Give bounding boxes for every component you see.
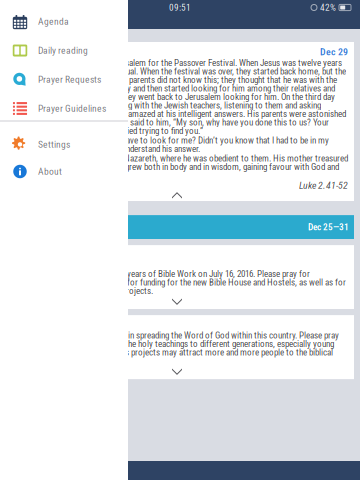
button[interactable]: Expand prayer request (0, 366, 354, 376)
staticText: Give thanks for the progress made in spr… (6, 331, 339, 365)
button[interactable]: Settings (0, 131, 128, 158)
staticText: So Jesus went back with them to Nazareth… (6, 154, 348, 180)
staticText: Settings (38, 139, 70, 150)
button[interactable]: Expand prayer request (0, 296, 354, 306)
staticText: Prayer Requests (38, 74, 101, 85)
staticText: Agenda (38, 16, 69, 27)
staticText: Luke 2.41-52 (299, 180, 348, 191)
staticText: 09:51 (169, 2, 191, 13)
staticText: The Bible Society will celebrate 50 year… (6, 270, 346, 295)
staticText: Dec 29 (320, 46, 348, 58)
staticText: 42% (320, 2, 336, 13)
button[interactable]: About (0, 158, 128, 185)
button[interactable]: Collapse daily reading (0, 191, 354, 201)
button[interactable]: Prayer Requests (0, 65, 128, 94)
staticText: Dec 25—31 (308, 222, 349, 233)
staticText: The parents of Jesus went to Jerusalem f… (6, 59, 346, 135)
staticText: About (38, 166, 62, 177)
button[interactable]: Dec 25—31 (0, 215, 354, 239)
staticText: Prayer Guidelines (38, 103, 106, 114)
staticText: He answered them, “Why did you have to l… (6, 136, 329, 153)
button[interactable]: Prayer Guidelines (0, 94, 128, 123)
staticText: Daily reading (38, 45, 88, 56)
button[interactable]: Agenda (0, 7, 128, 36)
button[interactable]: Daily reading (0, 36, 128, 65)
